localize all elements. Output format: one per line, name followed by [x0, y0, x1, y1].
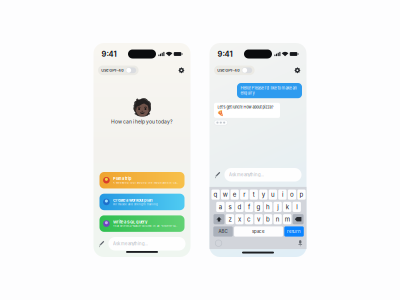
staticText: That selects a "status" column in an "or… [113, 224, 178, 228]
button[interactable]: k [283, 202, 291, 212]
staticText: For muscle and strength training [113, 203, 158, 206]
button[interactable]: t [250, 189, 258, 200]
staticText: Plan a trip [113, 176, 132, 181]
button[interactable]: Emoji keyboard [215, 239, 222, 247]
staticText: ABC [219, 229, 228, 234]
staticText: Write a SQL query [113, 220, 147, 224]
button[interactable]: d [235, 202, 244, 212]
staticText: Let's get lunch! How about pizza? [217, 105, 273, 109]
button[interactable]: Attach file [214, 171, 221, 179]
button[interactable]: Attach file [98, 240, 105, 248]
button[interactable]: r [240, 189, 248, 200]
staticText: Hello! Please I'd like to make an enquir… [240, 86, 296, 96]
button[interactable]: l [293, 202, 301, 212]
button[interactable]: x [235, 214, 244, 224]
staticText: z [228, 215, 231, 223]
button[interactable]: m [283, 214, 291, 224]
staticText: v [257, 215, 260, 223]
staticText: s [228, 203, 231, 211]
button[interactable]: c [245, 214, 253, 224]
staticText: space [252, 229, 265, 234]
button[interactable]: u [269, 189, 277, 200]
button[interactable]: Settings [293, 66, 302, 75]
staticText: n [276, 215, 280, 223]
button[interactable]: b [264, 214, 272, 224]
staticText: k [286, 203, 289, 211]
staticText: o [290, 191, 294, 198]
staticText: 🍕 [217, 110, 224, 116]
button[interactable]: return [284, 226, 304, 237]
staticText: m [285, 215, 290, 223]
button[interactable]: space [234, 226, 283, 237]
staticText: 9:41 [101, 49, 116, 58]
staticText: y [262, 191, 265, 198]
staticText: j [277, 203, 278, 211]
button[interactable]: Settings [177, 66, 186, 75]
button[interactable]: a [216, 202, 224, 212]
staticText: r [243, 191, 245, 198]
button[interactable]: o [288, 189, 296, 200]
button[interactable]: y [259, 189, 267, 200]
button[interactable]: p [297, 189, 306, 200]
staticText: c [247, 215, 251, 223]
button[interactable]: Delete [293, 214, 304, 224]
staticText: Create a workout plan [113, 198, 152, 203]
button[interactable]: i [278, 189, 287, 200]
button[interactable]: Create a workout plan [99, 194, 184, 210]
staticText: Use GPT-4o [217, 68, 239, 73]
staticText: q [214, 191, 218, 198]
button[interactable]: j [273, 202, 282, 212]
button[interactable]: e [230, 189, 239, 200]
staticText: Ask me anything... [229, 172, 264, 177]
staticText: Ask me anything... [113, 241, 148, 246]
staticText: i [282, 191, 283, 198]
button[interactable]: Plan a trip [99, 172, 184, 188]
button[interactable]: s [226, 202, 234, 212]
staticText: w [223, 191, 228, 198]
button[interactable]: g [254, 202, 263, 212]
button[interactable]: ABC [213, 226, 233, 237]
staticText: return [287, 229, 301, 234]
staticText: a [219, 203, 222, 211]
staticText: l [296, 203, 297, 211]
staticText: g [257, 203, 261, 211]
button[interactable]: Dictate [298, 239, 302, 247]
button[interactable]: f [245, 202, 253, 212]
button[interactable]: q [211, 189, 220, 200]
staticText: t [253, 191, 255, 198]
button[interactable]: v [254, 214, 263, 224]
staticText: A weekend tour around the mountains in C… [113, 181, 178, 184]
button[interactable]: z [226, 214, 234, 224]
staticText: 🧑🏿 [131, 98, 152, 117]
button[interactable]: Use GPT-4o [98, 65, 139, 75]
staticText: Use GPT-4o [101, 68, 123, 73]
button[interactable]: w [221, 189, 229, 200]
button[interactable]: h [264, 202, 272, 212]
button[interactable]: n [273, 214, 282, 224]
staticText: e [233, 191, 237, 198]
staticText: p [299, 191, 303, 198]
staticText: h [266, 203, 270, 211]
button[interactable]: Write a SQL query [99, 215, 184, 232]
staticText: d [237, 203, 241, 211]
staticText: b [266, 215, 270, 223]
staticText: u [271, 191, 275, 198]
staticText: x [238, 215, 241, 223]
staticText: f [248, 203, 250, 211]
staticText: How can i help you today? [111, 119, 173, 125]
staticText: 9:41 [217, 49, 232, 58]
button[interactable]: Use GPT-4o [214, 65, 255, 75]
button[interactable]: Shift [213, 214, 224, 224]
